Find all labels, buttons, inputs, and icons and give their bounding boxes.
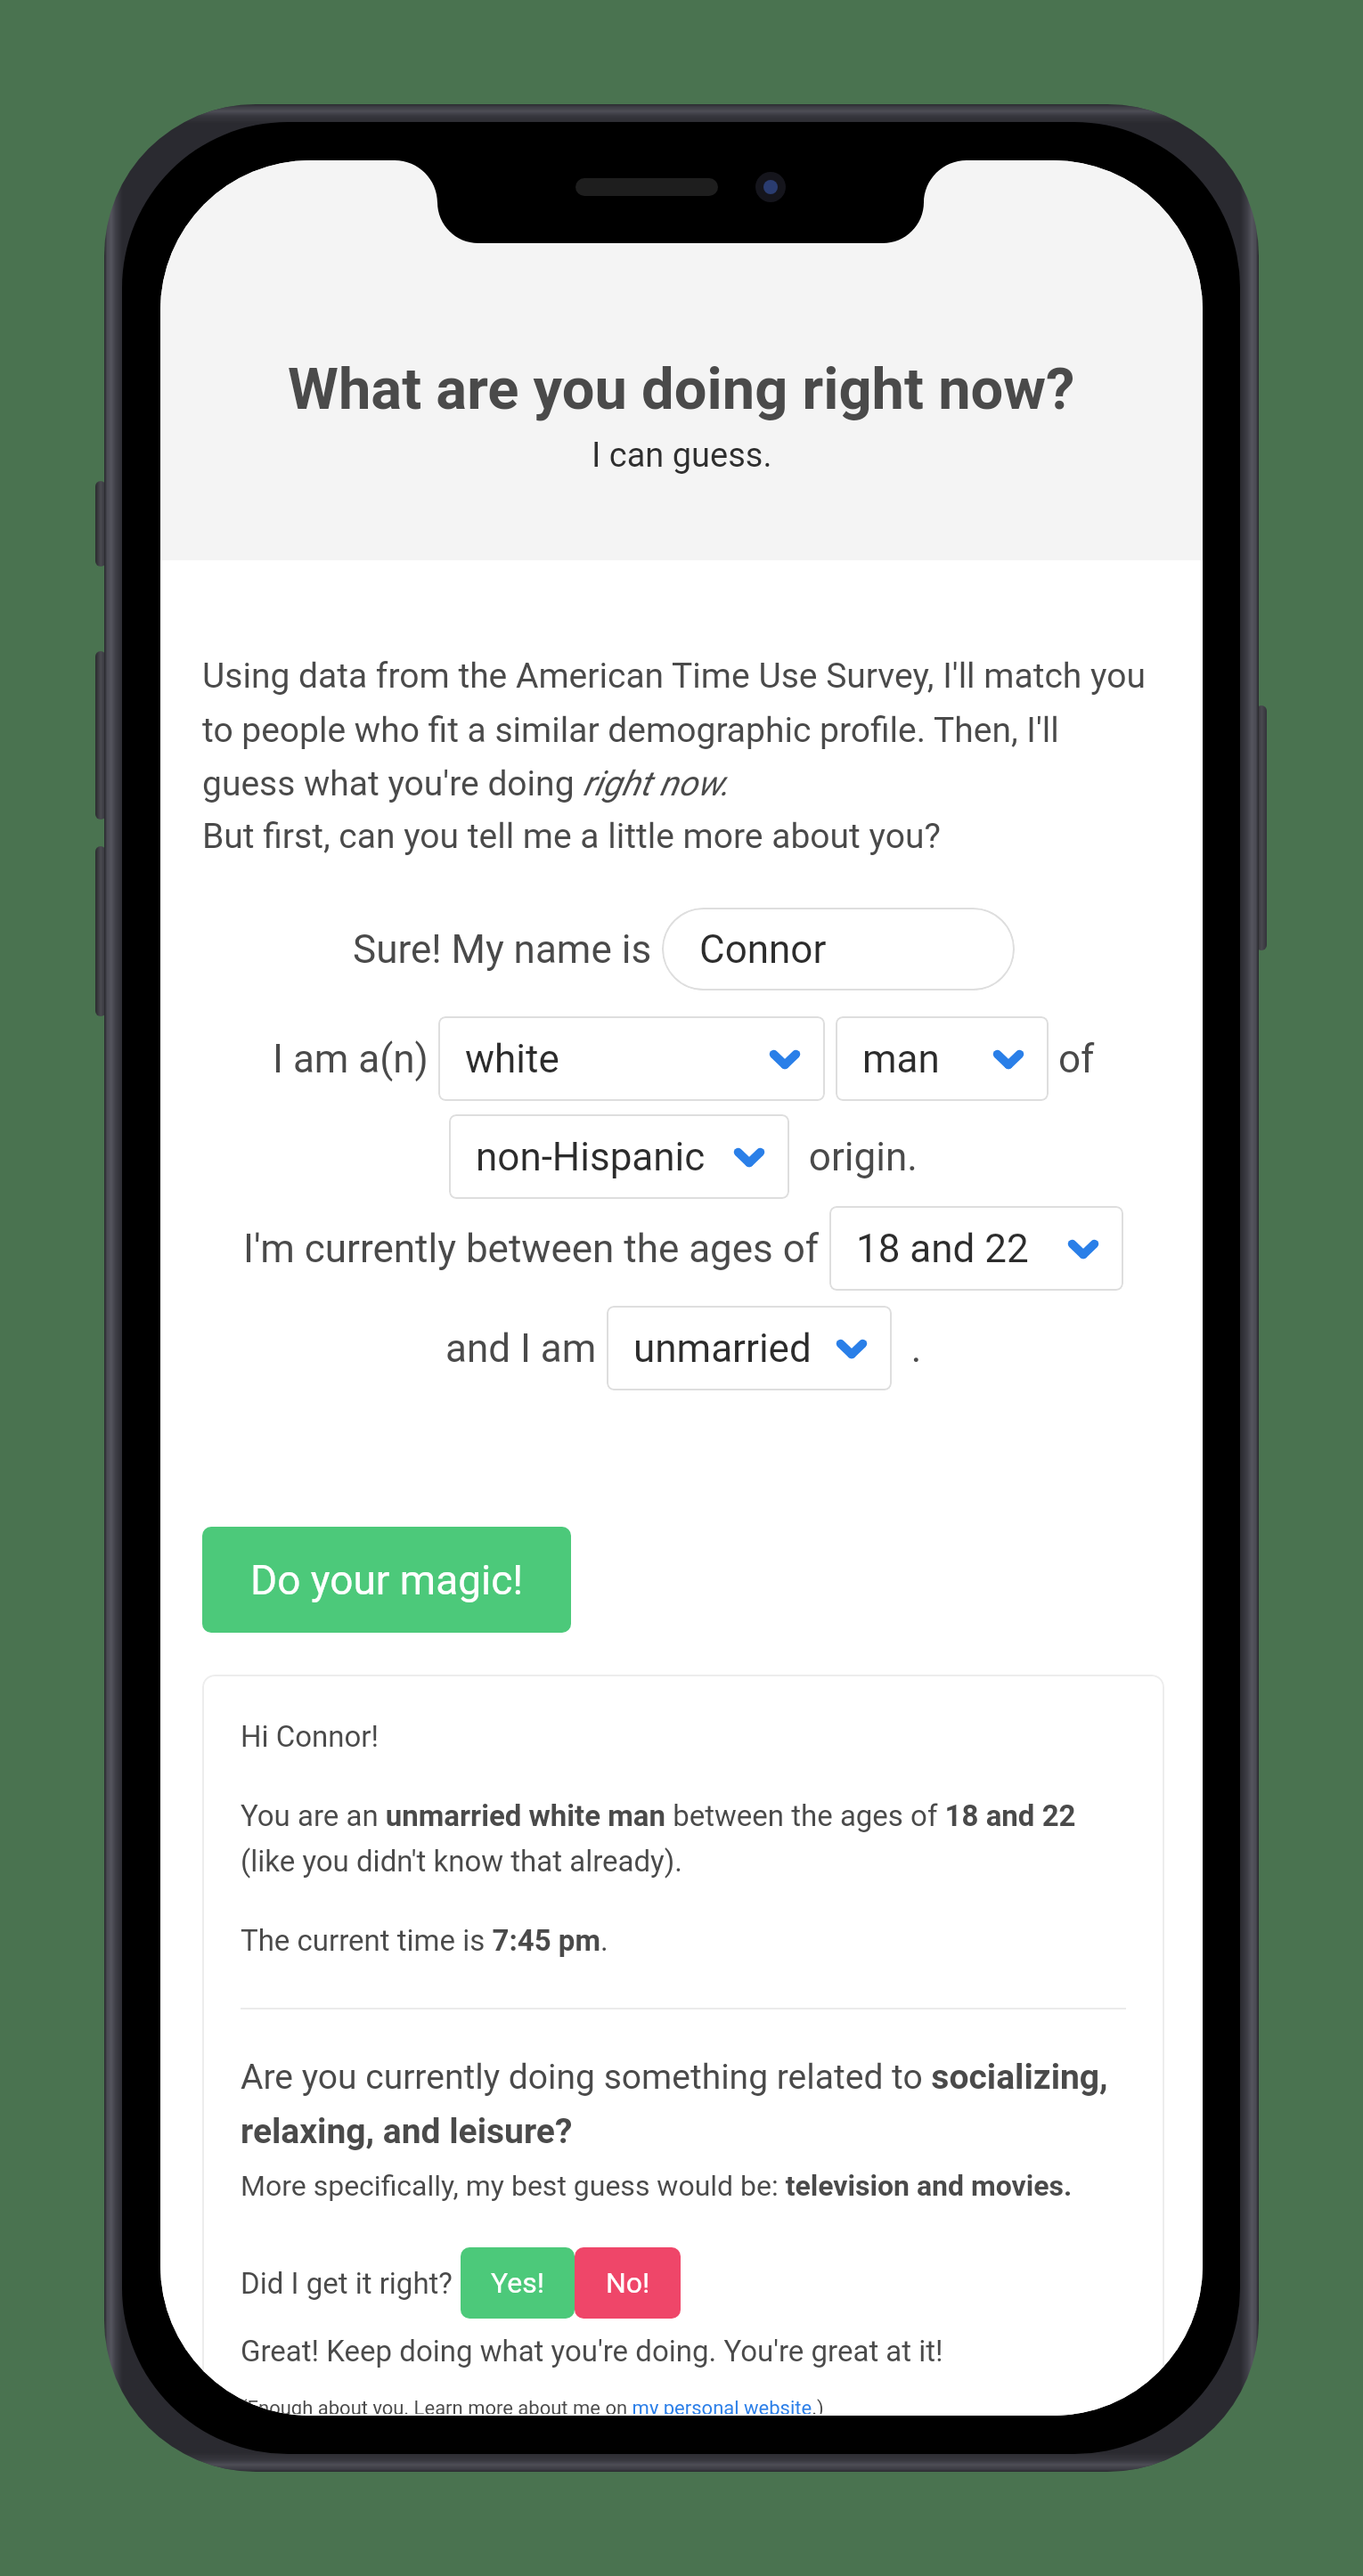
button[interactable]: unmarried <box>607 1306 892 1390</box>
staticText: I can guess. <box>592 436 772 476</box>
staticText: What are you doing right now? <box>288 355 1075 423</box>
staticText: (Enough about you. Learn more about me o… <box>241 2397 824 2416</box>
staticText: 18 and 22 <box>856 1226 1029 1272</box>
staticText: Great! Keep doing what you're doing. You… <box>241 2334 943 2368</box>
staticText: man <box>862 1036 940 1082</box>
button[interactable]: white <box>438 1016 825 1101</box>
staticText: But first, can you tell me a little more… <box>202 816 941 857</box>
staticText: No! <box>606 2266 650 2300</box>
staticText: You are an unmarried white man between t… <box>241 1798 1126 1879</box>
button[interactable]: Yes! <box>461 2247 575 2319</box>
staticText: I am a(n) <box>273 1036 438 1082</box>
staticText: Using data from the American Time Use Su… <box>202 656 1157 803</box>
staticText: Do your magic! <box>250 1556 524 1604</box>
staticText: . <box>892 1325 922 1372</box>
button[interactable]: Connor <box>662 908 1015 990</box>
button[interactable]: 18 and 22 <box>829 1206 1123 1291</box>
staticText: Hi Connor! <box>241 1719 380 1754</box>
button[interactable]: Do your magic! <box>202 1527 571 1633</box>
button[interactable]: non-Hispanic <box>449 1114 789 1199</box>
staticText: More specifically, my best guess would b… <box>241 2169 1073 2203</box>
staticText: unmarried <box>633 1325 812 1372</box>
staticText: and I am <box>445 1325 607 1372</box>
staticText: of <box>1049 1036 1095 1082</box>
staticText: Did I get it right? <box>241 2266 461 2301</box>
staticText: The current time is 7:45 pm. <box>241 1923 608 1958</box>
staticText: origin. <box>789 1134 918 1180</box>
staticText: white <box>465 1036 559 1082</box>
staticText: Yes! <box>491 2266 544 2300</box>
button[interactable]: man <box>836 1016 1049 1101</box>
staticText: non-Hispanic <box>476 1134 706 1180</box>
button[interactable]: No! <box>575 2247 681 2319</box>
staticText: Are you currently doing something relate… <box>241 2057 1126 2151</box>
staticText: Sure! My name is <box>353 926 662 973</box>
staticText: I'm currently between the ages of <box>243 1226 829 1272</box>
staticText: Connor <box>699 926 827 973</box>
